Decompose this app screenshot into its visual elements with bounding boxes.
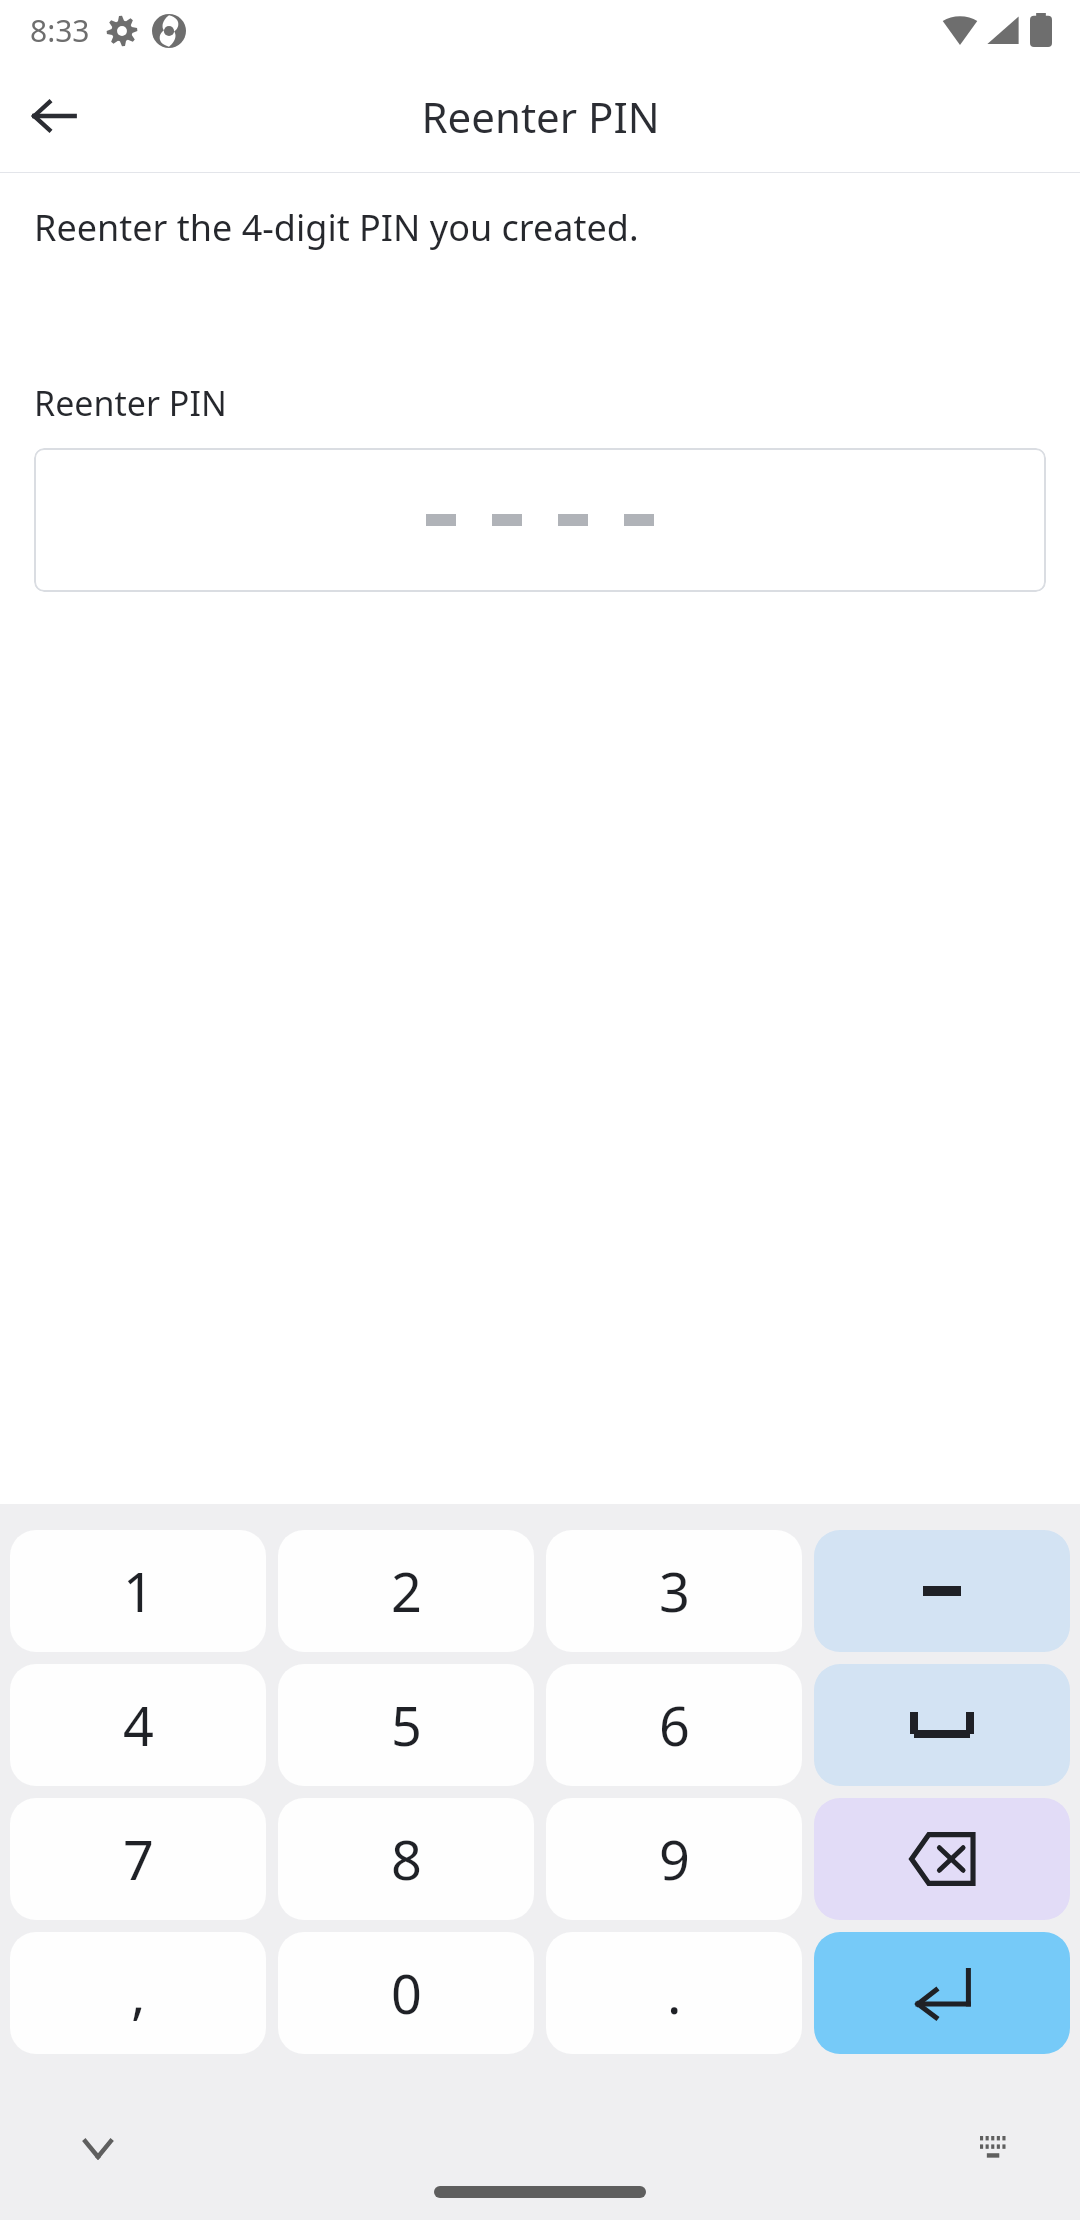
button[interactable]: backspace	[814, 1798, 1070, 1920]
staticText: 4	[123, 1688, 154, 1762]
button[interactable]: enter	[814, 1932, 1070, 2054]
staticText: 8	[391, 1822, 422, 1896]
button[interactable]: Switch keyboard	[956, 2111, 1032, 2187]
button[interactable]: .	[546, 1932, 802, 2054]
staticText: 1	[123, 1554, 154, 1628]
staticText: 6	[659, 1688, 690, 1762]
staticText: 2	[391, 1554, 422, 1628]
staticText: .	[667, 1956, 682, 2030]
staticText: 9	[659, 1822, 690, 1896]
staticText: Reenter PIN	[421, 88, 660, 145]
staticText: 7	[123, 1822, 154, 1896]
button[interactable]: 4	[10, 1664, 266, 1786]
button[interactable]: 0	[278, 1932, 534, 2054]
staticText: ,	[131, 1956, 146, 2030]
button[interactable]: Back	[14, 76, 94, 156]
staticText: 8:33	[30, 10, 90, 51]
button[interactable]: 7	[10, 1798, 266, 1920]
button[interactable]: 1	[10, 1530, 266, 1652]
button[interactable]	[34, 448, 1046, 592]
button[interactable]: 3	[546, 1530, 802, 1652]
button[interactable]: Home	[434, 2186, 646, 2198]
staticText: Reenter PIN	[34, 380, 227, 426]
button[interactable]: minus	[814, 1530, 1070, 1652]
button[interactable]: 5	[278, 1664, 534, 1786]
button[interactable]: space	[814, 1664, 1070, 1786]
button[interactable]: Hide keyboard	[60, 2111, 136, 2187]
button[interactable]: 8	[278, 1798, 534, 1920]
staticText: 3	[659, 1554, 690, 1628]
button[interactable]: 2	[278, 1530, 534, 1652]
staticText: Reenter the 4-digit PIN you created.	[34, 203, 639, 252]
staticText: 0	[391, 1956, 422, 2030]
button[interactable]: ,	[10, 1932, 266, 2054]
button[interactable]: 6	[546, 1664, 802, 1786]
button[interactable]: 9	[546, 1798, 802, 1920]
staticText: 5	[391, 1688, 422, 1762]
